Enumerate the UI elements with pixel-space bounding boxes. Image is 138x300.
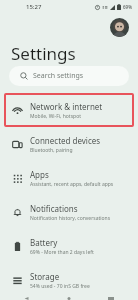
staticText: 15:27: [26, 3, 42, 11]
staticText: Settings: [11, 42, 76, 65]
button[interactable]: Notifications: [4, 195, 134, 229]
button[interactable]: Home: [54, 297, 84, 300]
staticText: Battery: [30, 237, 58, 248]
button[interactable]: Apps: [4, 161, 134, 195]
staticText: Search settings: [33, 71, 84, 81]
button[interactable]: Connected devices: [4, 127, 134, 161]
staticText: Assistant, recent apps, default apps: [30, 181, 114, 188]
staticText: Storage: [30, 271, 60, 282]
staticText: Mobile, Wi-Fi, hotspot: [30, 113, 81, 120]
staticText: Apps: [30, 169, 49, 180]
staticText: 69% - More than 2 days left: [30, 249, 94, 256]
staticText: Bluetooth, pairing: [30, 147, 73, 154]
staticText: 54% used - 70 inS GB free: [30, 283, 90, 290]
staticText: Notifications: [30, 203, 78, 214]
button[interactable]: Account avatar: [110, 18, 129, 37]
staticText: Network & internet: [30, 101, 103, 112]
button[interactable]: Recent apps: [96, 297, 126, 300]
button[interactable]: Storage: [4, 263, 134, 297]
button[interactable]: Battery: [4, 229, 134, 263]
button[interactable]: Search settings: [9, 66, 129, 86]
button[interactable]: Network & internet: [4, 93, 134, 127]
staticText: Notification history, conversations: [30, 215, 111, 222]
staticText: 69%: [123, 4, 132, 10]
staticText: Connected devices: [30, 135, 101, 146]
button[interactable]: Back: [12, 297, 42, 300]
